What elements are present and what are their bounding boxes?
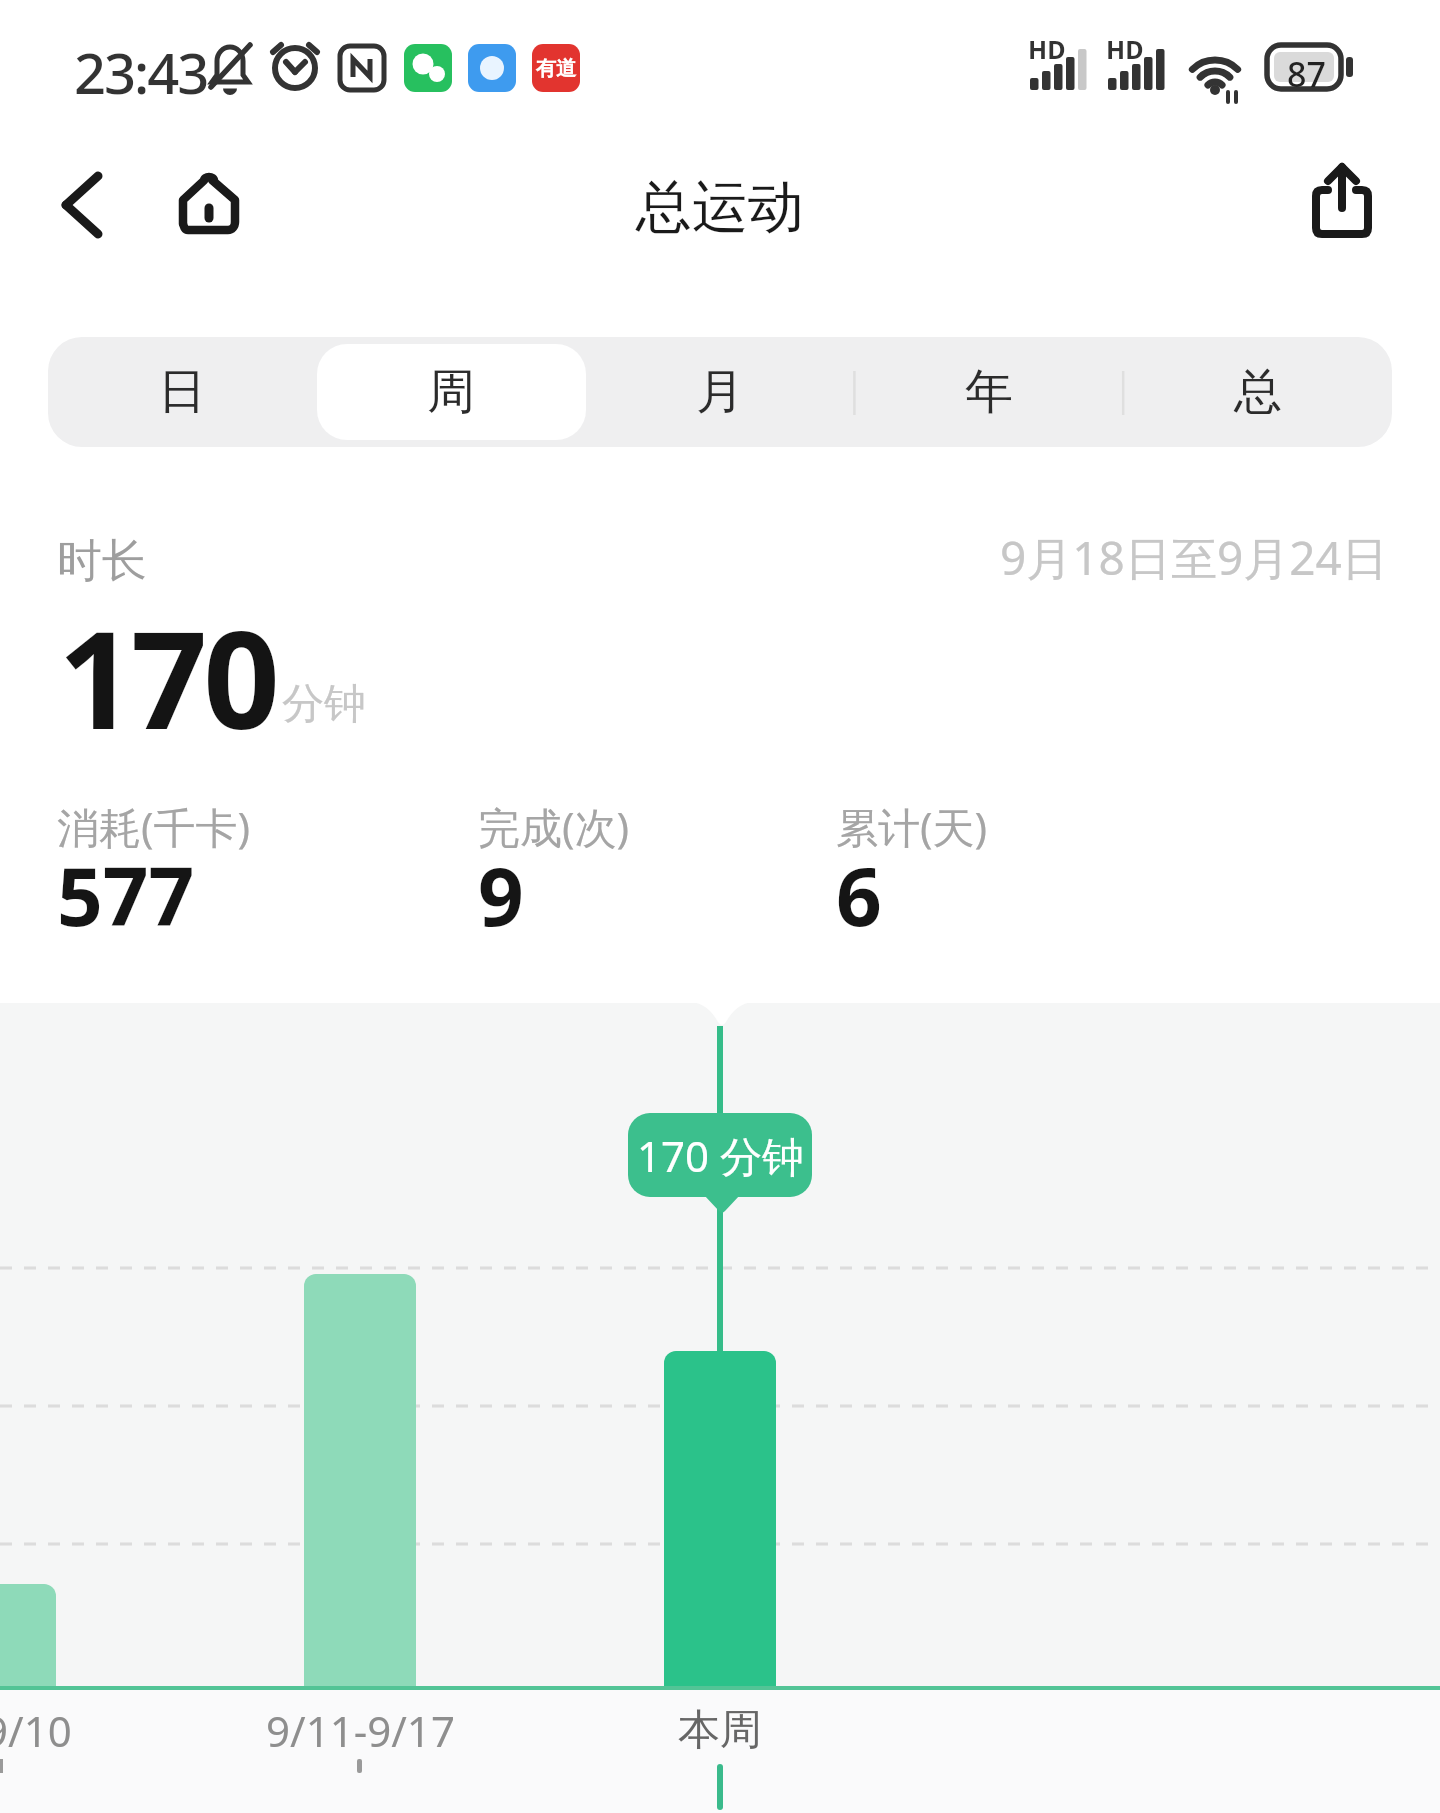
- staticText: 周: [427, 362, 475, 422]
- staticText: 9: [478, 840, 524, 949]
- button[interactable]: 170 分钟: [628, 1113, 812, 1197]
- staticText: 完成(次): [478, 798, 630, 855]
- staticText: 9/11-9/17: [266, 1702, 455, 1759]
- staticText: 消耗(千卡): [57, 798, 251, 855]
- staticText: 170 分钟: [637, 1127, 804, 1184]
- staticText: 总: [1234, 362, 1282, 422]
- staticText: 6: [836, 840, 882, 949]
- staticText: HD: [1106, 32, 1144, 66]
- staticText: 时长: [57, 533, 147, 590]
- button[interactable]: [168, 160, 252, 250]
- staticText: 有道: [536, 56, 576, 81]
- staticText: 分钟: [282, 678, 366, 731]
- staticText: 170: [58, 586, 276, 769]
- staticText: 577: [57, 840, 195, 949]
- staticText: 年: [965, 362, 1013, 422]
- staticText: 9/10: [0, 1702, 72, 1759]
- button[interactable]: 周: [316, 337, 585, 447]
- staticText: 总运动: [636, 172, 804, 243]
- staticText: 23:43: [74, 34, 208, 110]
- staticText: 87: [1287, 51, 1326, 97]
- staticText: HD: [1028, 32, 1066, 66]
- button[interactable]: 年: [854, 337, 1123, 447]
- button[interactable]: 总: [1123, 337, 1392, 447]
- button[interactable]: 日: [48, 337, 316, 447]
- staticText: 月: [696, 362, 744, 422]
- staticText: 累计(天): [836, 798, 988, 855]
- staticText: 日: [158, 362, 206, 422]
- button[interactable]: 月: [585, 337, 854, 447]
- staticText: 本周: [678, 1704, 762, 1757]
- button[interactable]: [44, 160, 124, 250]
- button[interactable]: [1296, 152, 1388, 252]
- staticText: 9月18日至9月24日: [1000, 526, 1388, 589]
